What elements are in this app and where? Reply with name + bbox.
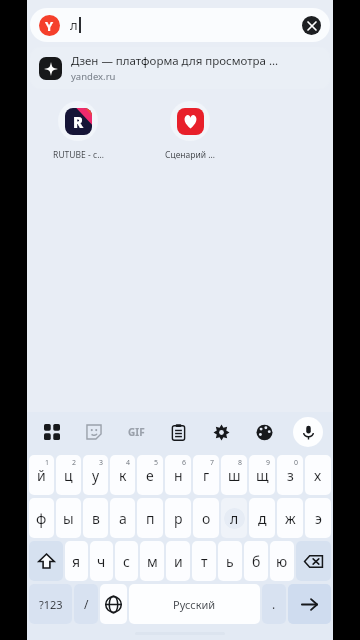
staticText: ю [276, 552, 288, 571]
button[interactable]: б [244, 541, 268, 581]
button[interactable]: з [277, 455, 303, 495]
staticText: Русский [173, 597, 216, 612]
button[interactable]: е [137, 455, 163, 495]
staticText: р [174, 509, 183, 528]
staticText: щ [256, 466, 269, 485]
staticText: н [174, 466, 183, 485]
staticText: б [252, 552, 261, 571]
button[interactable]: ж [277, 498, 303, 538]
button[interactable]: Y [30, 8, 330, 42]
staticText: й [37, 466, 46, 485]
button[interactable]: Enter [288, 584, 331, 624]
button[interactable]: Theme [243, 412, 286, 452]
button[interactable]: ь [218, 541, 242, 581]
staticText: ь [226, 552, 234, 571]
button[interactable]: п [137, 498, 163, 538]
button[interactable]: Clear [302, 16, 321, 35]
staticText: е [146, 466, 154, 485]
button[interactable]: Settings [200, 412, 243, 452]
staticText: г [203, 466, 210, 485]
staticText: ?123 [39, 597, 63, 612]
staticText: 1 [45, 458, 50, 468]
button[interactable]: х [305, 455, 331, 495]
button[interactable]: Change language [100, 584, 127, 624]
button[interactable]: л [221, 498, 247, 538]
staticText: с [123, 552, 130, 571]
staticText: RUTUBE - с… [53, 149, 104, 161]
staticText: 7 [210, 458, 215, 468]
staticText: 0 [294, 458, 299, 468]
staticText: / [84, 596, 89, 612]
button[interactable]: / [74, 584, 98, 624]
staticText: . [272, 596, 276, 612]
staticText: д [258, 509, 267, 528]
button[interactable]: э [305, 498, 331, 538]
button[interactable]: т [192, 541, 216, 581]
staticText: х [314, 466, 322, 485]
button[interactable]: ш [221, 455, 247, 495]
button[interactable]: Stickers [73, 412, 115, 452]
button[interactable]: в [83, 498, 108, 538]
staticText: Дзен — платформа для просмотра … [71, 53, 279, 69]
staticText: у [92, 466, 100, 485]
button[interactable]: а [110, 498, 135, 538]
staticText: т [201, 552, 208, 571]
staticText: Сценарий … [165, 149, 215, 161]
staticText: п [146, 509, 155, 528]
staticText: л [70, 16, 78, 34]
staticText: GIF [128, 425, 145, 439]
button[interactable]: ф [29, 498, 54, 538]
button[interactable]: ы [56, 498, 81, 538]
staticText: ш [228, 466, 241, 485]
button[interactable]: Apps [31, 412, 73, 452]
button[interactable]: Clipboard [157, 412, 200, 452]
button[interactable]: Русский [129, 584, 260, 624]
staticText: Y [45, 17, 54, 35]
staticText: 2 [72, 458, 77, 468]
button[interactable]: Сценарий … [159, 101, 221, 161]
staticText: ч [97, 552, 106, 571]
staticText: и [174, 552, 183, 571]
button[interactable]: R [47, 101, 109, 161]
staticText: yandex.ru [71, 70, 116, 83]
button[interactable]: р [165, 498, 191, 538]
button[interactable]: й [29, 455, 54, 495]
button[interactable]: GIF [115, 412, 157, 452]
staticText: э [315, 509, 322, 528]
staticText: 4 [126, 458, 131, 468]
button[interactable]: м [140, 541, 164, 581]
button[interactable]: ч [90, 541, 113, 581]
button[interactable]: д [249, 498, 275, 538]
staticText: ы [63, 509, 74, 528]
staticText: R [73, 112, 84, 132]
staticText: 5 [154, 458, 159, 468]
button[interactable]: и [166, 541, 190, 581]
staticText: 9 [266, 458, 271, 468]
button[interactable]: у [83, 455, 108, 495]
button[interactable]: . [262, 584, 286, 624]
button[interactable]: с [115, 541, 138, 581]
button[interactable]: о [193, 498, 219, 538]
staticText: 3 [99, 458, 104, 468]
button[interactable]: Backspace [296, 541, 331, 581]
staticText: а [119, 509, 127, 528]
staticText: ц [64, 466, 73, 485]
button[interactable]: ю [270, 541, 294, 581]
staticText: к [119, 466, 127, 485]
staticText: о [202, 509, 211, 528]
button[interactable]: ц [56, 455, 81, 495]
button[interactable]: щ [249, 455, 275, 495]
button[interactable]: н [165, 455, 191, 495]
button[interactable]: я [65, 541, 88, 581]
staticText: м [147, 552, 158, 571]
button[interactable]: Voice input [293, 417, 323, 447]
staticText: 6 [182, 458, 187, 468]
button[interactable]: Shift [29, 541, 63, 581]
staticText: 8 [238, 458, 243, 468]
staticText: з [287, 466, 294, 485]
button[interactable]: ?123 [29, 584, 72, 624]
staticText: в [92, 509, 100, 528]
button[interactable]: Дзен — платформа для просмотра … [30, 47, 330, 89]
button[interactable]: г [193, 455, 219, 495]
button[interactable]: к [110, 455, 135, 495]
